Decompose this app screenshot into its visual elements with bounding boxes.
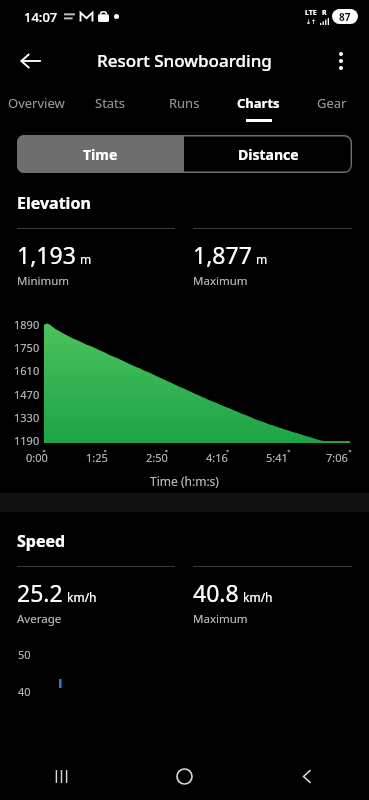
staticText: 5:41 — [266, 450, 288, 465]
staticText: 1330 — [14, 410, 40, 425]
button[interactable]: Back — [8, 38, 54, 84]
staticText: Stats — [95, 94, 126, 112]
staticText: 87 — [339, 10, 351, 24]
staticText: km/h — [243, 589, 273, 605]
staticText: Resort Snowboarding — [97, 49, 272, 72]
staticText: m — [256, 251, 268, 267]
staticText: 1:25 — [86, 450, 108, 465]
staticText: Speed — [17, 530, 66, 552]
staticText: 14:07 — [24, 8, 58, 26]
staticText: 25.2 — [17, 577, 63, 608]
button[interactable]: Recent apps — [0, 753, 123, 800]
button[interactable]: Back — [246, 753, 369, 800]
staticText: 4:16 — [206, 450, 228, 465]
staticText: Minimum — [17, 273, 70, 289]
staticText: 1470 — [14, 387, 40, 402]
button[interactable]: Stats — [73, 88, 147, 128]
staticText: 7:06 — [326, 450, 348, 465]
staticText: km/h — [67, 589, 97, 605]
staticText: 1750 — [14, 340, 40, 355]
button[interactable]: Distance — [184, 135, 352, 173]
staticText: Average — [17, 611, 62, 627]
staticText: Runs — [169, 94, 200, 112]
staticText: Maximum — [193, 273, 248, 289]
staticText: m — [80, 251, 92, 267]
staticText: Gear — [317, 94, 347, 112]
staticText: Overview — [8, 94, 65, 112]
staticText: 1610 — [14, 363, 40, 378]
button[interactable]: More options — [320, 40, 362, 82]
button[interactable]: Time — [17, 135, 184, 173]
staticText: Distance — [238, 145, 299, 164]
staticText: 40.8 — [193, 577, 239, 608]
staticText: 1,877 — [193, 239, 252, 270]
staticText: Charts — [237, 94, 280, 112]
button[interactable]: Overview — [0, 88, 73, 128]
staticText: Time — [83, 145, 118, 164]
staticText: 2:50 — [146, 450, 168, 465]
staticText: 0:00 — [26, 450, 48, 465]
staticText: 50 — [18, 647, 31, 662]
button[interactable]: Runs — [147, 88, 221, 128]
staticText: 1,193 — [17, 239, 76, 270]
staticText: Time (h:m:s) — [0, 473, 369, 489]
staticText: ↓↑ — [306, 18, 317, 25]
staticText: LTE — [305, 8, 317, 18]
button[interactable]: Gear — [295, 88, 369, 128]
staticText: 40 — [18, 684, 31, 697]
button[interactable]: Charts — [221, 88, 295, 128]
staticText: 1890 — [14, 317, 40, 332]
staticText: 1190 — [14, 433, 40, 448]
staticText: Maximum — [193, 611, 248, 627]
button[interactable]: Home — [123, 753, 246, 800]
staticText: R — [322, 8, 327, 18]
staticText: Elevation — [17, 192, 91, 214]
